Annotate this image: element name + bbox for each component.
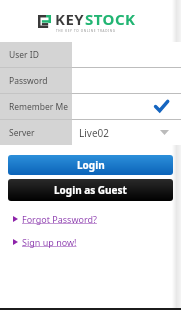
button[interactable]: Forgot Password?: [13, 212, 101, 226]
button[interactable]: Server: [0, 120, 181, 145]
button[interactable]: Live02: [72, 120, 181, 145]
button[interactable]: Remember Me checkbox: [72, 94, 181, 119]
staticText: THE KEY TO ONLINE TRADING: [56, 29, 116, 33]
staticText: STOCK: [85, 9, 136, 29]
staticText: Password: [9, 75, 48, 87]
button[interactable]: Remember Me: [0, 94, 181, 119]
staticText: Sign up now!: [22, 236, 77, 248]
staticText: Remember Me: [9, 101, 69, 113]
staticText: KEY: [55, 9, 85, 29]
button[interactable]: Password: [0, 68, 181, 93]
button[interactable]: Login as Guest: [8, 179, 173, 201]
staticText: User ID: [9, 49, 39, 61]
button[interactable]: User ID: [0, 42, 181, 67]
staticText: Forgot Password?: [22, 213, 97, 225]
staticText: Server: [9, 127, 35, 139]
staticText: Login as Guest: [54, 183, 127, 197]
button[interactable]: Login: [8, 155, 173, 175]
staticText: Live02: [79, 126, 109, 140]
staticText: Login: [77, 158, 105, 172]
button[interactable]: Sign up now!: [13, 235, 81, 249]
